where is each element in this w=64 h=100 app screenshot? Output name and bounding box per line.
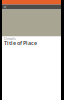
staticText: < — [3, 3, 6, 11]
button[interactable]: Back — [2, 4, 8, 9]
staticText: Details — [4, 36, 16, 41]
staticText: Title of Place — [4, 39, 37, 47]
